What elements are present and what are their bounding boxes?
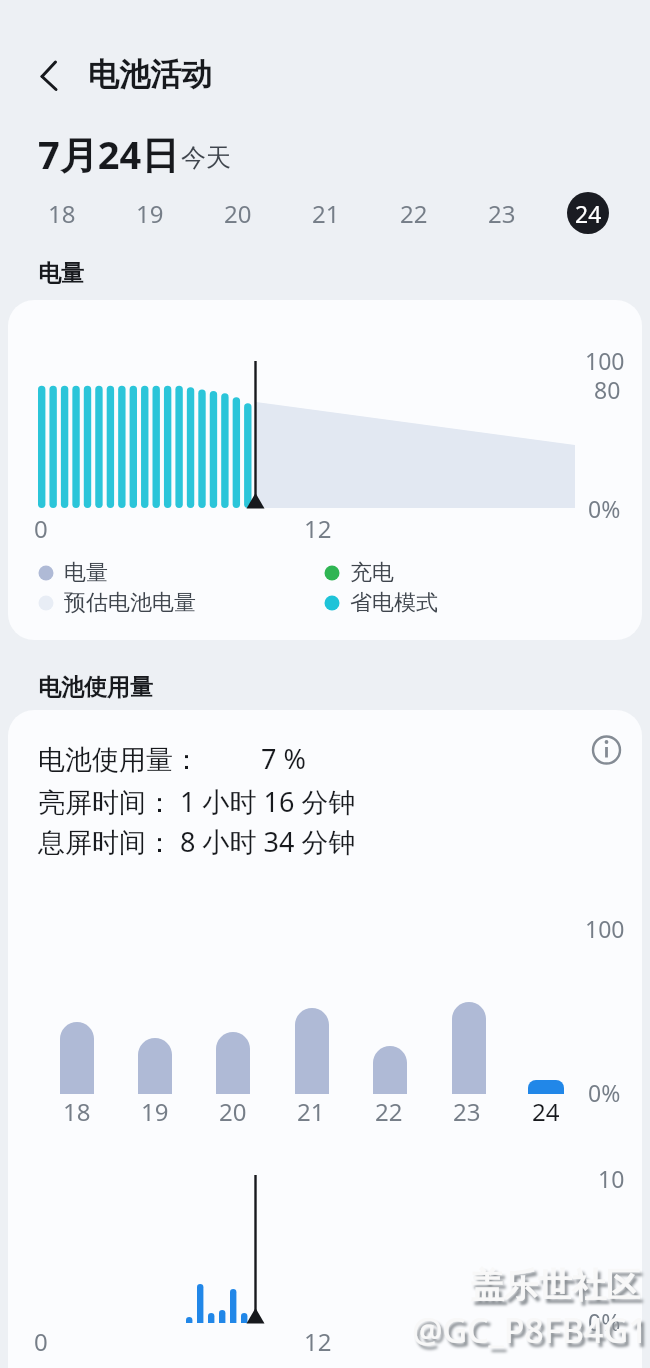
staticText: 亮屏时间： 1 小时 16 分钟	[38, 783, 356, 820]
staticText: 充电	[350, 559, 394, 587]
staticText: 23	[453, 1095, 481, 1128]
staticText: 电池使用量： 7 %	[38, 740, 306, 777]
staticText: 息屏时间： 8 小时 34 分钟	[38, 823, 356, 860]
staticText: 电池使用量	[38, 673, 153, 702]
staticText: 21	[297, 1095, 325, 1128]
staticText: 22	[375, 1095, 403, 1128]
staticText: @GC_P8FB4G1	[412, 1307, 648, 1353]
staticText: 18	[63, 1095, 91, 1128]
staticText: 电池活动	[88, 55, 212, 94]
staticText: 0%	[588, 1077, 621, 1108]
button[interactable]: 24	[567, 192, 609, 234]
staticText: 18	[48, 197, 76, 230]
staticText: 7月24日	[38, 128, 180, 180]
button[interactable]: 19	[120, 183, 180, 243]
staticText: 0	[34, 1325, 48, 1358]
button[interactable]: 23	[472, 183, 532, 243]
staticText: 今天	[181, 142, 231, 173]
staticText: 24	[532, 1095, 560, 1128]
button[interactable]: 21	[296, 183, 356, 243]
staticText: 0	[34, 512, 48, 545]
staticText: 电量	[64, 559, 108, 587]
staticText: 22	[400, 197, 428, 230]
staticText: 19	[141, 1095, 169, 1128]
staticText: 10	[598, 1163, 625, 1194]
staticText: 12	[304, 1325, 332, 1358]
staticText: 12	[304, 512, 332, 545]
staticText: 100	[585, 913, 625, 944]
staticText: 省电模式	[350, 589, 438, 617]
button[interactable]: 22	[384, 183, 444, 243]
staticText: 80	[594, 374, 621, 405]
staticText: 19	[136, 197, 164, 230]
staticText: 100	[585, 345, 625, 376]
button[interactable]	[582, 727, 630, 775]
staticText: 预估电池电量	[64, 589, 196, 617]
button[interactable]: 20	[208, 183, 268, 243]
staticText: 0%	[588, 493, 621, 524]
staticText: 20	[224, 197, 252, 230]
staticText: 23	[488, 197, 516, 230]
staticText: 24	[575, 198, 602, 229]
staticText: 电量	[38, 259, 84, 288]
staticText: 0%	[588, 1306, 621, 1337]
staticText: 20	[219, 1095, 247, 1128]
staticText: 21	[312, 197, 340, 230]
staticText: 盖乐世社区	[470, 1264, 640, 1307]
button[interactable]: 18	[32, 183, 92, 243]
button[interactable]	[28, 50, 76, 98]
